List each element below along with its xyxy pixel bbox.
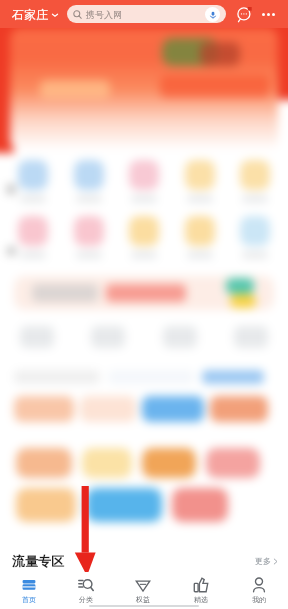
button[interactable]: 首页 xyxy=(0,572,57,609)
staticText: 我的 xyxy=(252,595,266,604)
staticText: 更多 xyxy=(255,556,271,566)
staticText: 权益 xyxy=(136,595,150,604)
button[interactable]: 语音搜索 xyxy=(205,7,220,22)
staticText: 携号入网 xyxy=(86,9,122,20)
staticText: 套 xyxy=(6,182,17,196)
button[interactable]: 石家庄 xyxy=(10,4,61,25)
staticText: 石家庄 xyxy=(12,7,48,22)
staticText: 本 xyxy=(6,244,17,258)
button[interactable]: 消息 xyxy=(234,4,254,24)
button[interactable]: 分类 xyxy=(57,572,114,609)
button[interactable]: 携号入网 xyxy=(67,5,226,23)
staticText: 流量专区 xyxy=(12,553,64,569)
staticText: 分类 xyxy=(79,595,93,604)
staticText: 精选 xyxy=(194,595,208,604)
button[interactable]: 权益 xyxy=(114,572,172,609)
button[interactable]: 精选 xyxy=(172,572,230,609)
button[interactable]: 更多 xyxy=(258,4,278,24)
button[interactable]: 我的 xyxy=(230,572,288,609)
button[interactable]: 更多 xyxy=(245,553,288,569)
staticText: 首页 xyxy=(22,595,36,604)
